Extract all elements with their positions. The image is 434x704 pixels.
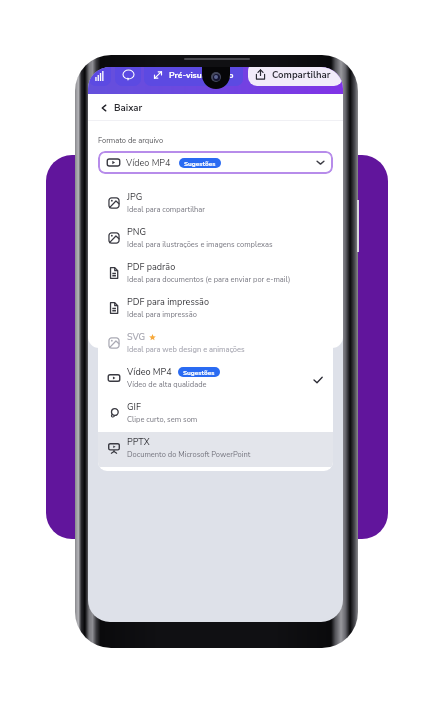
button[interactable]: Comments [115, 67, 141, 86]
button[interactable]: Vídeo MP4 [98, 151, 333, 174]
staticText: Sugestões [183, 368, 215, 377]
button[interactable]: Compartilhar [248, 67, 343, 86]
staticText: PDF padrão [127, 261, 176, 273]
button[interactable]: PNG [98, 222, 333, 257]
staticText: GIF [127, 401, 141, 413]
button[interactable]: PDF padrão [98, 257, 333, 292]
staticText: Clipe curto, sem som [127, 414, 198, 424]
staticText: Pré-visualização [169, 69, 234, 81]
staticText: JPG [127, 191, 143, 203]
button[interactable]: Pré-visualização [144, 67, 243, 86]
button[interactable]: PDF para impressão [98, 292, 333, 327]
staticText: PPTX [127, 436, 150, 448]
staticText: Ideal para impressão [127, 309, 197, 319]
button[interactable]: Baixar [88, 94, 343, 121]
staticText: PDF para impressão [127, 296, 209, 308]
staticText: Formato de arquivo [98, 135, 164, 145]
button[interactable]: SVG [98, 327, 333, 362]
staticText: Ideal para compartilhar [127, 204, 206, 214]
staticText: Vídeo de alta qualidade [127, 379, 207, 389]
button[interactable]: Statistics [89, 67, 111, 86]
staticText: Vídeo MP4 [126, 157, 171, 169]
staticText: PNG [127, 226, 146, 238]
staticText: Ideal para ilustrações e imagens complex… [127, 239, 273, 249]
staticText: Sugestões [184, 159, 216, 168]
button[interactable]: PPTX [98, 432, 333, 467]
button[interactable]: Vídeo MP4 [98, 362, 333, 397]
staticText: Documento do Microsoft PowerPoint [127, 449, 251, 459]
staticText: Ideal para documentos (e para enviar por… [127, 274, 291, 284]
staticText: Vídeo MP4 [127, 366, 172, 378]
button[interactable]: JPG [98, 187, 333, 222]
staticText: Ideal para web design e animações [127, 344, 245, 354]
staticText: Compartilhar [272, 68, 331, 81]
staticText: Baixar [114, 101, 143, 114]
staticText: SVG [127, 331, 146, 343]
button[interactable]: GIF [98, 397, 333, 432]
